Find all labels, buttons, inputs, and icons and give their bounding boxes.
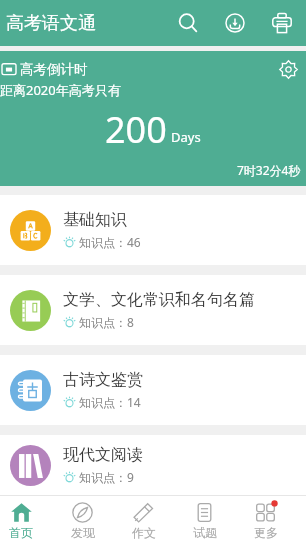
button[interactable]: Settings: [275, 56, 301, 82]
staticText: 作文: [132, 525, 156, 540]
staticText: 发现: [71, 525, 95, 540]
staticText: 更多: [254, 525, 278, 540]
button[interactable]: Print: [258, 0, 305, 46]
button[interactable]: 首页: [0, 496, 52, 546]
staticText: 知识点：14: [79, 394, 141, 410]
staticText: 现代文阅读: [63, 445, 143, 465]
button[interactable]: 发现: [52, 496, 113, 546]
button[interactable]: 更多: [235, 496, 296, 546]
staticText: 知识点：8: [79, 314, 134, 330]
staticText: 知识点：46: [79, 234, 141, 250]
staticText: 古诗文鉴赏: [63, 370, 143, 390]
button[interactable]: 试题: [174, 496, 235, 546]
button[interactable]: 基础知识: [0, 195, 306, 265]
button[interactable]: Search: [164, 0, 211, 46]
staticText: Days: [171, 128, 201, 146]
staticText: 7时32分4秒: [237, 162, 301, 178]
staticText: 首页: [9, 525, 33, 540]
button[interactable]: 作文: [113, 496, 174, 546]
staticText: 试题: [193, 525, 217, 540]
button[interactable]: Download: [211, 0, 258, 46]
staticText: 基础知识: [63, 210, 127, 230]
button[interactable]: 文学、文化常识和名句名篇: [0, 275, 306, 345]
staticText: 知识点：9: [79, 469, 134, 485]
staticText: 距离2020年高考只有: [0, 81, 121, 99]
staticText: 高考倒计时: [20, 61, 88, 78]
staticText: 200: [105, 105, 167, 154]
staticText: 文学、文化常识和名句名篇: [63, 290, 255, 310]
staticText: 高考语文通: [6, 12, 96, 35]
button[interactable]: 古诗文鉴赏: [0, 355, 306, 425]
button[interactable]: 现代文阅读: [0, 435, 306, 495]
